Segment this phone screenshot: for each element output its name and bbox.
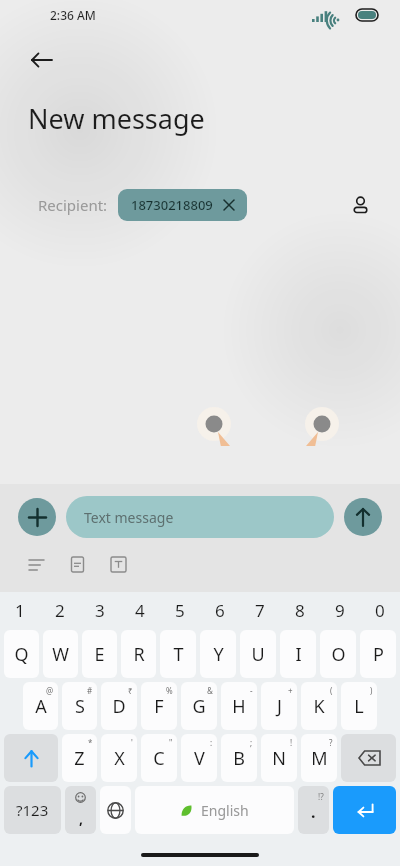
staticText: T	[173, 642, 184, 667]
staticText: !?	[318, 791, 324, 802]
button[interactable]: Contacts	[342, 187, 378, 223]
button[interactable]: 6	[200, 592, 240, 628]
staticText: G	[192, 694, 206, 719]
button[interactable]: R	[121, 630, 156, 678]
button[interactable]: W	[43, 630, 78, 678]
button[interactable]: C	[141, 734, 177, 782]
staticText: Text message	[84, 508, 174, 527]
button[interactable]: Enter	[333, 786, 396, 834]
staticText: L	[354, 694, 364, 719]
staticText: :	[210, 737, 213, 748]
button[interactable]: Shift	[4, 734, 58, 782]
button[interactable]: 1	[0, 592, 40, 628]
staticText: I	[295, 642, 302, 667]
button[interactable]: English	[135, 786, 294, 834]
button[interactable]: L	[341, 682, 377, 730]
button[interactable]: E	[82, 630, 117, 678]
staticText: K	[313, 694, 325, 719]
staticText: English	[201, 801, 249, 820]
button[interactable]: 4	[120, 592, 160, 628]
button[interactable]: X	[101, 734, 137, 782]
staticText: 4	[135, 599, 145, 622]
staticText: Z	[74, 746, 85, 771]
button[interactable]: D	[101, 682, 137, 730]
staticText: N	[272, 746, 286, 771]
button[interactable]: 9	[320, 592, 360, 628]
button[interactable]: B	[221, 734, 257, 782]
staticText: ;	[250, 737, 253, 748]
staticText: M	[311, 746, 328, 771]
button[interactable]: Subject	[63, 550, 91, 578]
button[interactable]: P	[360, 630, 396, 678]
staticText: +	[288, 685, 293, 696]
button[interactable]: J	[261, 682, 297, 730]
button[interactable]: Backspace	[341, 734, 396, 782]
button[interactable]: F	[141, 682, 177, 730]
staticText: 8	[295, 599, 305, 622]
button[interactable]: Y	[200, 630, 236, 678]
button[interactable]: G	[181, 682, 217, 730]
button[interactable]: Z	[62, 734, 97, 782]
staticText: E	[94, 642, 105, 667]
button[interactable]: H	[221, 682, 257, 730]
button[interactable]: Text format	[104, 550, 132, 578]
button[interactable]: A	[23, 682, 58, 730]
button[interactable]: 18730218809	[118, 189, 247, 221]
staticText: ?	[329, 737, 333, 748]
button[interactable]: 8	[280, 592, 320, 628]
button[interactable]: 0	[360, 592, 400, 628]
staticText: J	[277, 694, 282, 719]
staticText: ₹	[128, 685, 133, 696]
staticText: Y	[213, 642, 224, 667]
staticText: 0	[375, 599, 385, 622]
staticText: 5	[175, 599, 185, 622]
staticText: Recipient:	[38, 195, 108, 215]
staticText: 2:36 AM	[50, 7, 96, 23]
staticText: ,	[79, 809, 83, 828]
staticText: 1	[15, 599, 25, 622]
button[interactable]: Send	[344, 498, 382, 536]
staticText: H	[232, 694, 246, 719]
staticText: @	[46, 685, 54, 696]
button[interactable]: S	[62, 682, 97, 730]
button[interactable]: N	[261, 734, 297, 782]
button[interactable]: 7	[240, 592, 280, 628]
staticText: F	[154, 694, 164, 719]
staticText: &	[207, 685, 213, 696]
button[interactable]: Emoji and comma	[65, 786, 96, 834]
staticText: O	[331, 642, 346, 667]
button[interactable]: Back	[20, 38, 64, 82]
staticText: B	[233, 746, 245, 771]
staticText: New message	[28, 100, 205, 137]
button[interactable]: 2	[40, 592, 80, 628]
staticText: !	[290, 737, 293, 748]
button[interactable]: K	[301, 682, 337, 730]
button[interactable]: V	[181, 734, 217, 782]
staticText: -	[250, 685, 253, 696]
button[interactable]: Text message	[66, 496, 334, 538]
staticText: V	[194, 746, 205, 771]
button[interactable]: O	[320, 630, 356, 678]
button[interactable]: Period	[298, 786, 329, 834]
button[interactable]: ?123	[4, 786, 61, 834]
staticText: C	[153, 746, 165, 771]
button[interactable]: Add attachment	[18, 498, 56, 536]
button[interactable]: U	[240, 630, 276, 678]
button[interactable]: I	[280, 630, 316, 678]
button[interactable]: T	[160, 630, 196, 678]
button[interactable]: Q	[4, 630, 39, 678]
staticText: 7	[255, 599, 265, 622]
staticText: %	[166, 685, 173, 696]
button[interactable]: Change language	[100, 786, 131, 834]
staticText: P	[373, 642, 384, 667]
button[interactable]: 5	[160, 592, 200, 628]
staticText: X	[114, 746, 125, 771]
button[interactable]: M	[301, 734, 337, 782]
staticText: A	[35, 694, 47, 719]
staticText: ?123	[16, 800, 49, 820]
staticText: .	[311, 801, 316, 823]
staticText: U	[251, 642, 265, 667]
button[interactable]: 3	[80, 592, 120, 628]
staticText: (	[330, 685, 333, 696]
button[interactable]: List	[22, 550, 50, 578]
